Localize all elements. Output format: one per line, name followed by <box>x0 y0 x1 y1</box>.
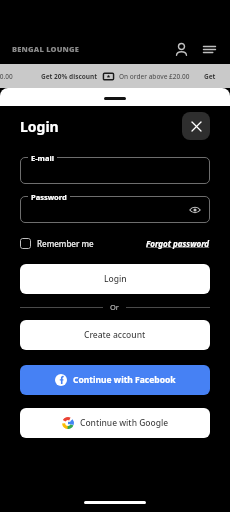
staticText: Or <box>110 302 119 312</box>
button[interactable] <box>20 196 210 223</box>
staticText: Continue with Google <box>80 417 169 429</box>
button[interactable]: Close <box>182 112 210 140</box>
staticText: Password <box>31 192 67 202</box>
button[interactable]: Login <box>20 264 210 294</box>
button[interactable] <box>20 157 210 184</box>
button[interactable]: Remember me <box>20 238 94 249</box>
button[interactable]: Continue with Facebook <box>20 365 210 395</box>
button[interactable]: Continue with Google <box>20 408 210 438</box>
staticText: Login <box>104 273 127 285</box>
staticText: On order above £20.00 <box>119 72 190 81</box>
staticText: Login <box>20 117 59 136</box>
staticText: BENGAL LOUNGE <box>12 44 80 54</box>
staticText: E-mail <box>31 153 54 163</box>
button[interactable]: Forgot password <box>146 238 210 249</box>
button[interactable]: Show password <box>187 202 203 218</box>
staticText: Remember me <box>37 238 94 249</box>
staticText: Get 20% discount <box>41 72 98 81</box>
staticText: Forgot password <box>146 238 210 249</box>
staticText: Create account <box>84 329 146 341</box>
staticText: Get <box>204 72 216 81</box>
staticText: 20.00 <box>0 72 13 81</box>
button[interactable]: Create account <box>20 320 210 350</box>
staticText: Continue with Facebook <box>73 374 176 386</box>
button[interactable]: Menu <box>198 38 220 60</box>
button[interactable]: Account <box>170 38 192 60</box>
